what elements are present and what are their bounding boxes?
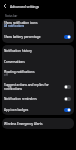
staticText: Status bar [5,14,18,18]
staticText: Wireless Emergency Alerts [4,122,43,126]
staticText: Show battery percentage [4,35,41,39]
button[interactable]: App icon badges [2,104,74,115]
button[interactable]: Suggest actions and replies for notifica… [2,80,74,93]
button[interactable]: Notification reminders [2,93,74,104]
staticText: Floating notifications [4,70,35,74]
button[interactable]: Floating notifications [2,67,74,80]
staticText: App icon badges [4,108,29,112]
button[interactable]: Show battery percentage [2,31,74,43]
staticText: Notification history [4,49,32,53]
button[interactable]: Back [0,0,10,12]
staticText: Notification reminders [4,97,37,101]
button[interactable]: Wireless Emergency Alerts [2,118,74,129]
button[interactable]: Show notification icons [2,19,74,31]
staticText: off [4,73,8,77]
staticText: Show notification icons [4,21,38,25]
button[interactable]: Notification history [2,45,74,56]
staticText: Conversations [4,60,25,64]
staticText: Advanced settings [10,4,40,9]
staticText: All notifications [4,24,25,28]
button[interactable]: Conversations [2,56,74,67]
staticText: Suggest actions and replies for notifica… [4,83,51,91]
